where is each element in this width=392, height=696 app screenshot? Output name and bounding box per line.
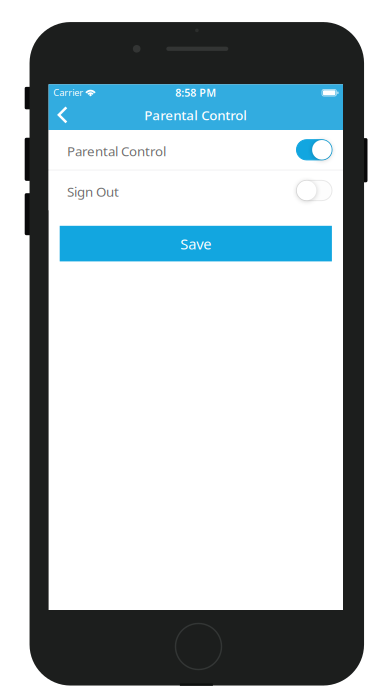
staticText: Save (180, 234, 211, 254)
staticText: 8:58 PM (175, 86, 216, 100)
button[interactable]: Save (60, 226, 332, 261)
button[interactable]: Sign Out (49, 171, 343, 210)
button[interactable]: Back (49, 102, 80, 130)
staticText: Sign Out (67, 183, 119, 200)
staticText: Parental Control (144, 106, 247, 124)
button[interactable]: Parental Control (49, 130, 343, 170)
staticText: Carrier (53, 86, 83, 99)
staticText: Parental Control (67, 142, 166, 160)
